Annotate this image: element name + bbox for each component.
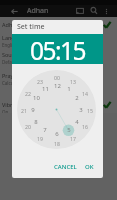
- button[interactable]: Vibrate: [0, 96, 117, 113]
- staticText: 8: [34, 118, 38, 126]
- button[interactable]: Prayer times: [0, 66, 117, 96]
- staticText: 4: [75, 118, 79, 126]
- staticText: 5: [67, 126, 71, 134]
- staticText: Set time: [17, 22, 45, 32]
- staticText: 10: [33, 94, 40, 102]
- staticText: Sound: [2, 51, 19, 58]
- staticText: On: [2, 109, 9, 113]
- staticText: 19: [37, 135, 43, 142]
- button[interactable]: Language: [0, 32, 117, 49]
- staticText: 7: [43, 126, 47, 134]
- staticText: CANCEL: [54, 163, 77, 171]
- staticText: 11: [42, 85, 49, 93]
- staticText: 16: [82, 123, 88, 130]
- staticText: 23: [37, 78, 43, 85]
- button[interactable]: Cast: [75, 6, 85, 16]
- button[interactable]: Sound: [0, 49, 117, 66]
- staticText: 14: [82, 90, 88, 97]
- staticText: 1: [67, 85, 71, 93]
- staticText: 6: [55, 130, 59, 138]
- staticText: Default: [2, 59, 18, 65]
- staticText: Adhan: [27, 6, 49, 16]
- staticText: Language: [2, 34, 28, 41]
- staticText: 00: [54, 74, 60, 81]
- staticText: 22: [25, 90, 31, 97]
- button[interactable]: Search: [89, 6, 99, 16]
- staticText: 9: [31, 106, 35, 114]
- staticText: Prayer times: [2, 72, 35, 79]
- staticText: 2: [75, 94, 79, 102]
- staticText: 3: [79, 106, 83, 114]
- staticText: 05:15: [30, 34, 86, 64]
- button[interactable]: Adhan: [0, 17, 117, 32]
- staticText: 20: [25, 123, 31, 130]
- staticText: 12: [54, 82, 61, 90]
- button[interactable]: CANCEL: [50, 160, 81, 174]
- staticText: 15: [87, 107, 93, 114]
- staticText: 18: [54, 140, 60, 147]
- staticText: Vibrate: [2, 101, 21, 108]
- staticText: Adhan: [2, 21, 19, 28]
- button[interactable]: More options: [102, 7, 111, 16]
- staticText: 17: [70, 135, 76, 142]
- button[interactable]: OK: [81, 160, 98, 174]
- staticText: OK: [85, 163, 94, 171]
- staticText: English: [2, 42, 18, 48]
- staticText: 13: [70, 78, 76, 85]
- staticText: 21: [21, 107, 27, 114]
- staticText: Calculation method: [2, 80, 44, 86]
- button[interactable]: Back: [10, 7, 19, 16]
